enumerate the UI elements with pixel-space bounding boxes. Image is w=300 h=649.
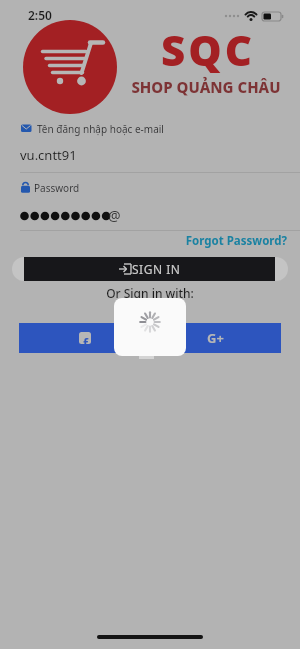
button[interactable]: Password xyxy=(34,181,80,195)
button[interactable]: SIGN IN xyxy=(24,257,275,281)
button[interactable]: G+ xyxy=(150,323,281,353)
staticText: @ xyxy=(108,206,121,225)
staticText: vu.cntt91 xyxy=(20,146,77,164)
button[interactable]: Forgot Password? xyxy=(157,233,287,249)
staticText: SHOP QUẢNG CHÂU xyxy=(128,77,284,97)
staticText: SQC xyxy=(130,21,286,78)
staticText: G+ xyxy=(207,329,224,347)
button[interactable]: f xyxy=(19,323,150,353)
staticText: f xyxy=(83,334,89,344)
button[interactable]: vu.cntt91 xyxy=(14,141,286,169)
button[interactable]: @ xyxy=(14,202,286,229)
button[interactable]: Tên đăng nhập hoặc e-mail xyxy=(37,122,164,136)
staticText: 2:50 xyxy=(28,7,52,23)
staticText: SIGN IN xyxy=(132,261,181,277)
staticText: Or Sign in with: xyxy=(0,285,300,301)
